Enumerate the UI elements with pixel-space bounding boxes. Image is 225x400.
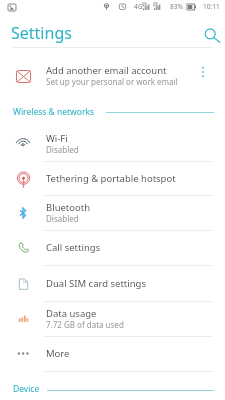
button[interactable]: Wi-Fi: [0, 127, 225, 161]
staticText: Wi-Fi: [46, 132, 68, 145]
staticText: Dual SIM card settings: [46, 277, 146, 290]
button[interactable]: Tethering & portable hotspot: [0, 161, 225, 195]
staticText: Wireless & networks: [13, 106, 95, 118]
staticText: 4G: [134, 2, 143, 11]
staticText: Tethering & portable hotspot: [46, 172, 176, 185]
staticText: Bluetooth: [46, 201, 91, 214]
staticText: Add another email account: [46, 64, 167, 77]
staticText: Disabled: [46, 213, 79, 224]
staticText: Data usage: [46, 307, 97, 320]
button[interactable]: More options: [196, 64, 210, 80]
staticText: Settings: [11, 22, 72, 44]
button[interactable]: Call settings: [0, 230, 225, 265]
button[interactable]: Dual SIM card settings: [0, 265, 225, 302]
button[interactable]: Add another email account: [0, 49, 225, 89]
button[interactable]: Data usage: [0, 301, 225, 336]
staticText: 7.72 GB of data used: [46, 319, 124, 330]
button[interactable]: Bluetooth: [0, 195, 225, 230]
staticText: More: [46, 347, 70, 360]
button[interactable]: More: [0, 336, 225, 371]
staticText: Set up your personal or work email: [46, 76, 178, 87]
staticText: Disabled: [46, 144, 79, 155]
staticText: 83%: [170, 2, 183, 11]
staticText: Call settings: [46, 241, 101, 254]
staticText: 10:11: [203, 2, 220, 11]
staticText: Device: [13, 383, 40, 395]
button[interactable]: Search: [196, 20, 218, 42]
